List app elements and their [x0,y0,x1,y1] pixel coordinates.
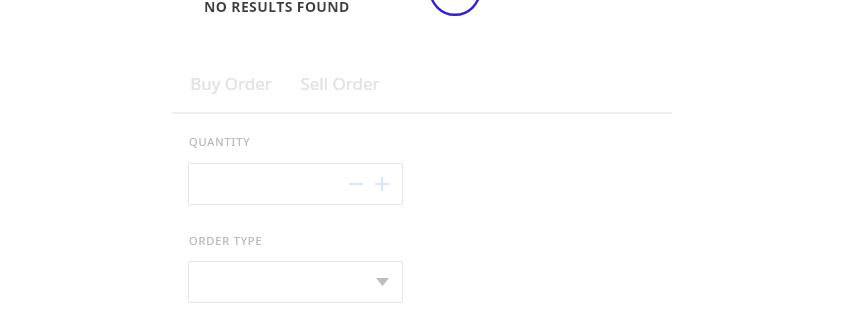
staticText: Buy Order [190,72,272,95]
button[interactable]: Decrease quantity [345,173,367,195]
staticText: Sell Order [300,72,380,95]
button[interactable]: NO RESULTS FOUND [204,0,350,16]
button[interactable]: Decrease quantity [188,163,403,205]
staticText: ORDER TYPE [189,233,263,248]
button[interactable]: Order type dropdown [188,261,403,303]
button[interactable]: Sell Order [298,68,382,99]
button[interactable]: Increase quantity [371,173,393,195]
button[interactable]: Add [429,0,481,16]
button[interactable]: Buy Order [188,68,274,99]
staticText: NO RESULTS FOUND [204,0,350,16]
staticText: QUANTITY [189,134,251,149]
